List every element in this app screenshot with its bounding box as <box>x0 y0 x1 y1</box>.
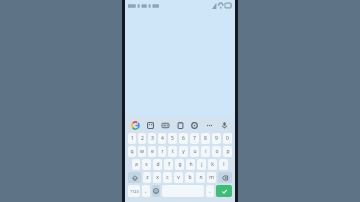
button[interactable]: f <box>164 159 173 170</box>
button[interactable]: g <box>175 159 184 170</box>
button[interactable]: 5 <box>168 133 177 144</box>
button[interactable]: n <box>196 172 205 183</box>
staticText: x <box>156 174 159 181</box>
staticText: y <box>182 148 185 155</box>
staticText: i <box>205 148 207 155</box>
button[interactable]: ?123 <box>128 185 140 197</box>
staticText: o <box>215 148 219 155</box>
button[interactable]: GIF <box>160 120 171 131</box>
staticText: u <box>193 148 197 155</box>
button[interactable]: 4 <box>158 133 166 144</box>
button[interactable]: 9 <box>212 133 221 144</box>
button[interactable]: 7 <box>190 133 199 144</box>
button[interactable]: Emoji <box>152 185 160 197</box>
button[interactable]: w <box>138 146 146 157</box>
staticText: h <box>189 161 193 168</box>
staticText: 1 <box>131 135 134 142</box>
button[interactable]: . <box>206 185 214 197</box>
staticText: f <box>168 161 170 168</box>
button[interactable]: s <box>142 159 151 170</box>
staticText: 5 <box>171 135 174 142</box>
button[interactable]: Shift <box>128 172 141 183</box>
button[interactable]: e <box>148 146 156 157</box>
button[interactable]: Google search <box>130 120 141 131</box>
button[interactable]: Enter <box>216 185 232 197</box>
staticText: a <box>135 161 138 168</box>
button[interactable]: y <box>179 146 188 157</box>
button[interactable]: d <box>153 159 162 170</box>
button[interactable]: r <box>158 146 166 157</box>
staticText: 9 <box>215 135 218 142</box>
button[interactable]: i <box>201 146 210 157</box>
staticText: k <box>211 161 214 168</box>
staticText: d <box>156 161 160 168</box>
button[interactable]: o <box>212 146 221 157</box>
staticText: g <box>178 161 182 168</box>
staticText: s <box>145 161 148 168</box>
staticText: . <box>209 188 211 195</box>
button[interactable]: Settings <box>189 120 200 131</box>
button[interactable]: 8 <box>201 133 210 144</box>
staticText: t <box>172 148 174 155</box>
button[interactable]: More options <box>204 120 215 131</box>
button[interactable]: j <box>197 159 206 170</box>
staticText: m <box>209 174 214 181</box>
staticText: v <box>177 174 180 181</box>
staticText: r <box>161 148 164 155</box>
staticText: 6 <box>182 135 185 142</box>
button[interactable]: t <box>168 146 177 157</box>
staticText: q <box>130 148 134 155</box>
staticText: 2 <box>141 135 144 142</box>
button[interactable]: x <box>153 172 161 183</box>
staticText: 4 <box>161 135 164 142</box>
button[interactable]: p <box>223 146 232 157</box>
button[interactable]: 3 <box>148 133 156 144</box>
staticText: z <box>146 174 149 181</box>
button[interactable]: u <box>190 146 199 157</box>
button[interactable]: 1 <box>128 133 136 144</box>
button[interactable]: z <box>143 172 151 183</box>
staticText: b <box>188 174 192 181</box>
button[interactable]: Stickers <box>145 120 156 131</box>
button[interactable]: v <box>174 172 183 183</box>
button[interactable]: Voice input <box>219 120 230 131</box>
button[interactable]: k <box>208 159 217 170</box>
button[interactable]: h <box>186 159 195 170</box>
staticText: , <box>145 188 147 195</box>
button[interactable]: Backspace <box>218 172 232 183</box>
button[interactable]: a <box>132 159 140 170</box>
button[interactable]: , <box>142 185 150 197</box>
staticText: 7 <box>193 135 196 142</box>
staticText: 8 <box>204 135 207 142</box>
staticText: p <box>226 148 230 155</box>
button[interactable]: q <box>128 146 136 157</box>
button[interactable]: c <box>163 172 172 183</box>
staticText: w <box>140 148 144 155</box>
button[interactable]: Clipboard <box>175 120 186 131</box>
staticText: ?123 <box>130 189 139 194</box>
staticText: c <box>166 174 169 181</box>
button[interactable]: 2 <box>138 133 146 144</box>
staticText: n <box>199 174 203 181</box>
staticText: l <box>223 161 225 168</box>
button[interactable]: 6 <box>179 133 188 144</box>
staticText: e <box>151 148 154 155</box>
staticText: j <box>201 161 203 168</box>
button[interactable]: 0 <box>223 133 232 144</box>
button[interactable]: m <box>207 172 216 183</box>
button[interactable]: b <box>185 172 194 183</box>
staticText: 3 <box>151 135 154 142</box>
button[interactable]: l <box>219 159 228 170</box>
staticText: 0 <box>226 135 229 142</box>
